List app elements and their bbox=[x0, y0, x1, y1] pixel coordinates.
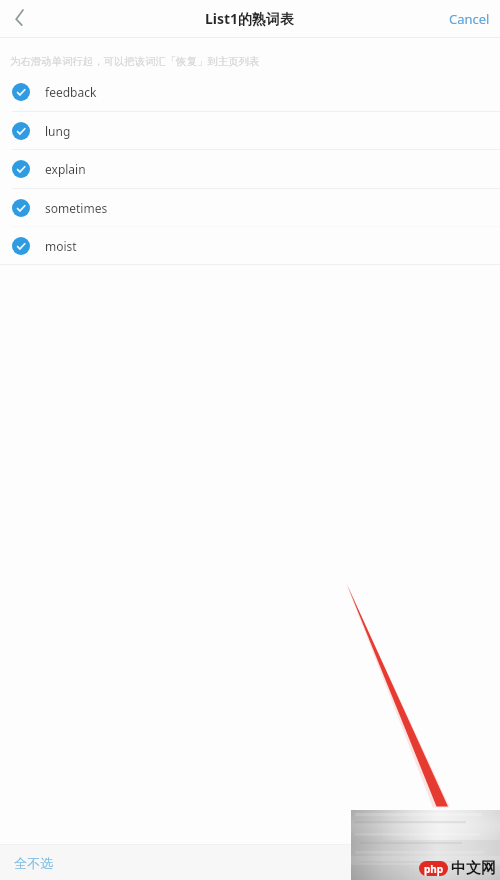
staticText: 全不选 bbox=[14, 855, 53, 871]
staticText: List1的熟词表 bbox=[205, 9, 295, 28]
staticText: moist bbox=[45, 238, 77, 254]
button[interactable]: Deselect lung bbox=[0, 112, 500, 150]
staticText: sometimes bbox=[45, 200, 108, 216]
button[interactable]: Deselect sometimes bbox=[12, 199, 30, 217]
button[interactable]: Back bbox=[0, 0, 40, 37]
staticText: 为右滑动单词行起，可以把该词汇「恢复」到主页列表 bbox=[10, 55, 260, 68]
staticText: Cancel bbox=[449, 10, 490, 28]
staticText: lung bbox=[45, 123, 71, 139]
button[interactable]: 全不选 bbox=[0, 847, 65, 879]
button[interactable]: Cancel bbox=[439, 2, 500, 36]
staticText: php bbox=[424, 862, 444, 876]
button[interactable]: Deselect explain bbox=[12, 160, 30, 178]
button[interactable]: Deselect moist bbox=[12, 237, 30, 255]
staticText: 中文网 bbox=[451, 859, 496, 878]
button[interactable]: Deselect lung bbox=[12, 122, 30, 140]
button[interactable]: Deselect feedback bbox=[0, 73, 500, 111]
button[interactable]: Deselect explain bbox=[0, 150, 500, 188]
staticText: feedback bbox=[45, 84, 97, 100]
button[interactable]: Deselect sometimes bbox=[0, 189, 500, 227]
staticText: explain bbox=[45, 161, 86, 177]
button[interactable]: Deselect moist bbox=[0, 227, 500, 265]
button[interactable]: Deselect feedback bbox=[12, 83, 30, 101]
